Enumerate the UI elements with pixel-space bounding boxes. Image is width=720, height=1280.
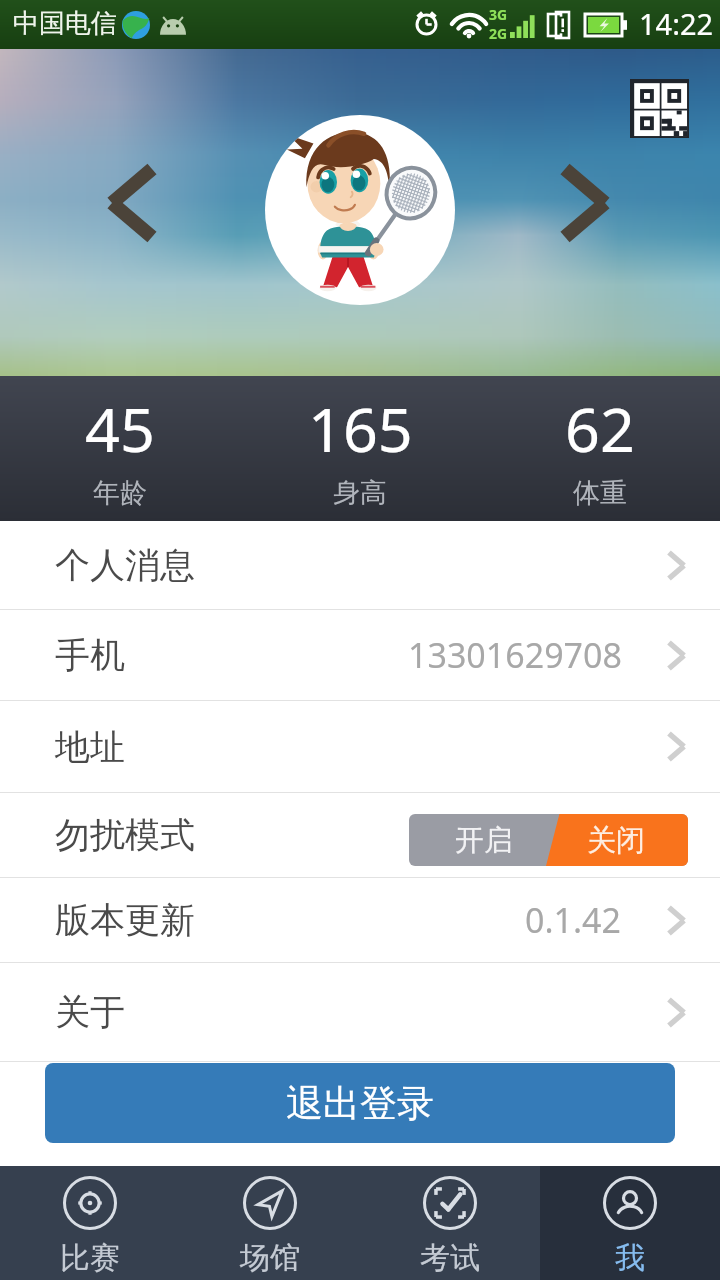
staticText: 退出登录: [286, 1080, 434, 1127]
staticText: 2G: [489, 24, 508, 43]
button[interactable]: 退出登录: [45, 1063, 675, 1143]
staticText: 0.1.42: [525, 897, 622, 943]
staticText: 关闭: [587, 822, 645, 859]
staticText: 个人消息: [55, 543, 195, 587]
staticText: 关于: [55, 990, 125, 1034]
staticText: 3G: [489, 5, 508, 24]
button[interactable]: 比赛: [0, 1166, 180, 1280]
staticText: 勿扰模式: [55, 813, 195, 857]
staticText: 年龄: [93, 476, 147, 510]
button[interactable]: 地址: [0, 701, 720, 792]
button[interactable]: 关于: [0, 963, 720, 1061]
button[interactable]: 个人消息: [0, 521, 720, 609]
staticText: 版本更新: [55, 898, 195, 942]
staticText: 身高: [333, 476, 387, 510]
staticText: 14:22: [639, 4, 714, 43]
staticText: 考试: [420, 1239, 480, 1277]
staticText: 开启: [455, 822, 513, 859]
button[interactable]: Previous: [92, 163, 172, 243]
staticText: 165: [308, 387, 413, 470]
button[interactable]: 45: [0, 376, 240, 521]
staticText: 体重: [573, 476, 627, 510]
button[interactable]: Avatar: [265, 115, 455, 305]
staticText: 45: [85, 387, 155, 470]
button[interactable]: 场馆: [180, 1166, 360, 1280]
button[interactable]: 版本更新: [0, 878, 720, 962]
staticText: 地址: [55, 725, 125, 769]
button[interactable]: 62: [480, 376, 720, 521]
button[interactable]: 我: [540, 1166, 720, 1280]
staticText: 场馆: [240, 1239, 300, 1277]
button[interactable]: 开启: [409, 814, 688, 866]
button[interactable]: Next: [545, 163, 625, 243]
staticText: 手机: [55, 633, 125, 677]
button[interactable]: 考试: [360, 1166, 540, 1280]
staticText: 我: [615, 1239, 645, 1277]
staticText: 13301629708: [408, 632, 622, 678]
staticText: 比赛: [60, 1239, 120, 1277]
button[interactable]: 手机: [0, 610, 720, 700]
button[interactable]: 165: [240, 376, 480, 521]
staticText: 中国电信: [13, 7, 117, 40]
staticText: 62: [565, 387, 635, 470]
button[interactable]: QR code: [630, 79, 689, 138]
